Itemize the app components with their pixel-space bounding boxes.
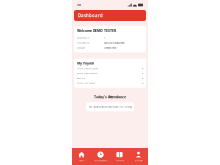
staticText: Welcome DEMO TESTER [77, 28, 116, 33]
staticText: Today's Attendance [94, 95, 126, 99]
staticText: Dashboard [78, 13, 103, 18]
staticText: 0 [142, 77, 143, 79]
staticText: BONUS [77, 77, 85, 79]
staticText: Home [79, 159, 84, 162]
staticText: No attendance recorded for today [88, 105, 131, 109]
button[interactable]: Home [72, 148, 91, 165]
staticText: TOTAL GROSS SALARY [77, 67, 98, 70]
staticText: Employee ID [77, 36, 90, 39]
staticText: HRTech Tech [104, 46, 116, 49]
staticText: My Payroll [115, 159, 123, 162]
button[interactable]: My Profile [129, 148, 148, 165]
button[interactable]: My Attendance [91, 148, 110, 165]
staticText: TOTAL NET SALARY [77, 81, 95, 84]
staticText: My Attendance [94, 159, 107, 162]
staticText: SENIOR DEVELOPER [104, 41, 124, 44]
staticText: 1 [104, 36, 105, 39]
staticText: 0 [142, 67, 143, 70]
button[interactable]: My Payroll [110, 148, 129, 165]
staticText: 9:41 [77, 3, 81, 7]
staticText: 0 [142, 72, 143, 75]
staticText: TOTAL DEDUCTION [77, 72, 98, 75]
staticText: 0 [142, 81, 143, 84]
staticText: Company [77, 46, 85, 49]
staticText: Designation [77, 41, 89, 44]
staticText: My Profile [134, 159, 142, 162]
staticText: My Payroll [77, 61, 94, 65]
